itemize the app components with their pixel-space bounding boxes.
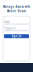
staticText: Mobile Device (6, 9, 26, 13)
staticText: Manage Access with (2, 5, 30, 8)
button[interactable]: Sign In (4, 34, 29, 38)
staticText: Sign In (11, 34, 21, 38)
staticText: Password (4, 27, 16, 30)
staticText: Email (4, 20, 10, 24)
